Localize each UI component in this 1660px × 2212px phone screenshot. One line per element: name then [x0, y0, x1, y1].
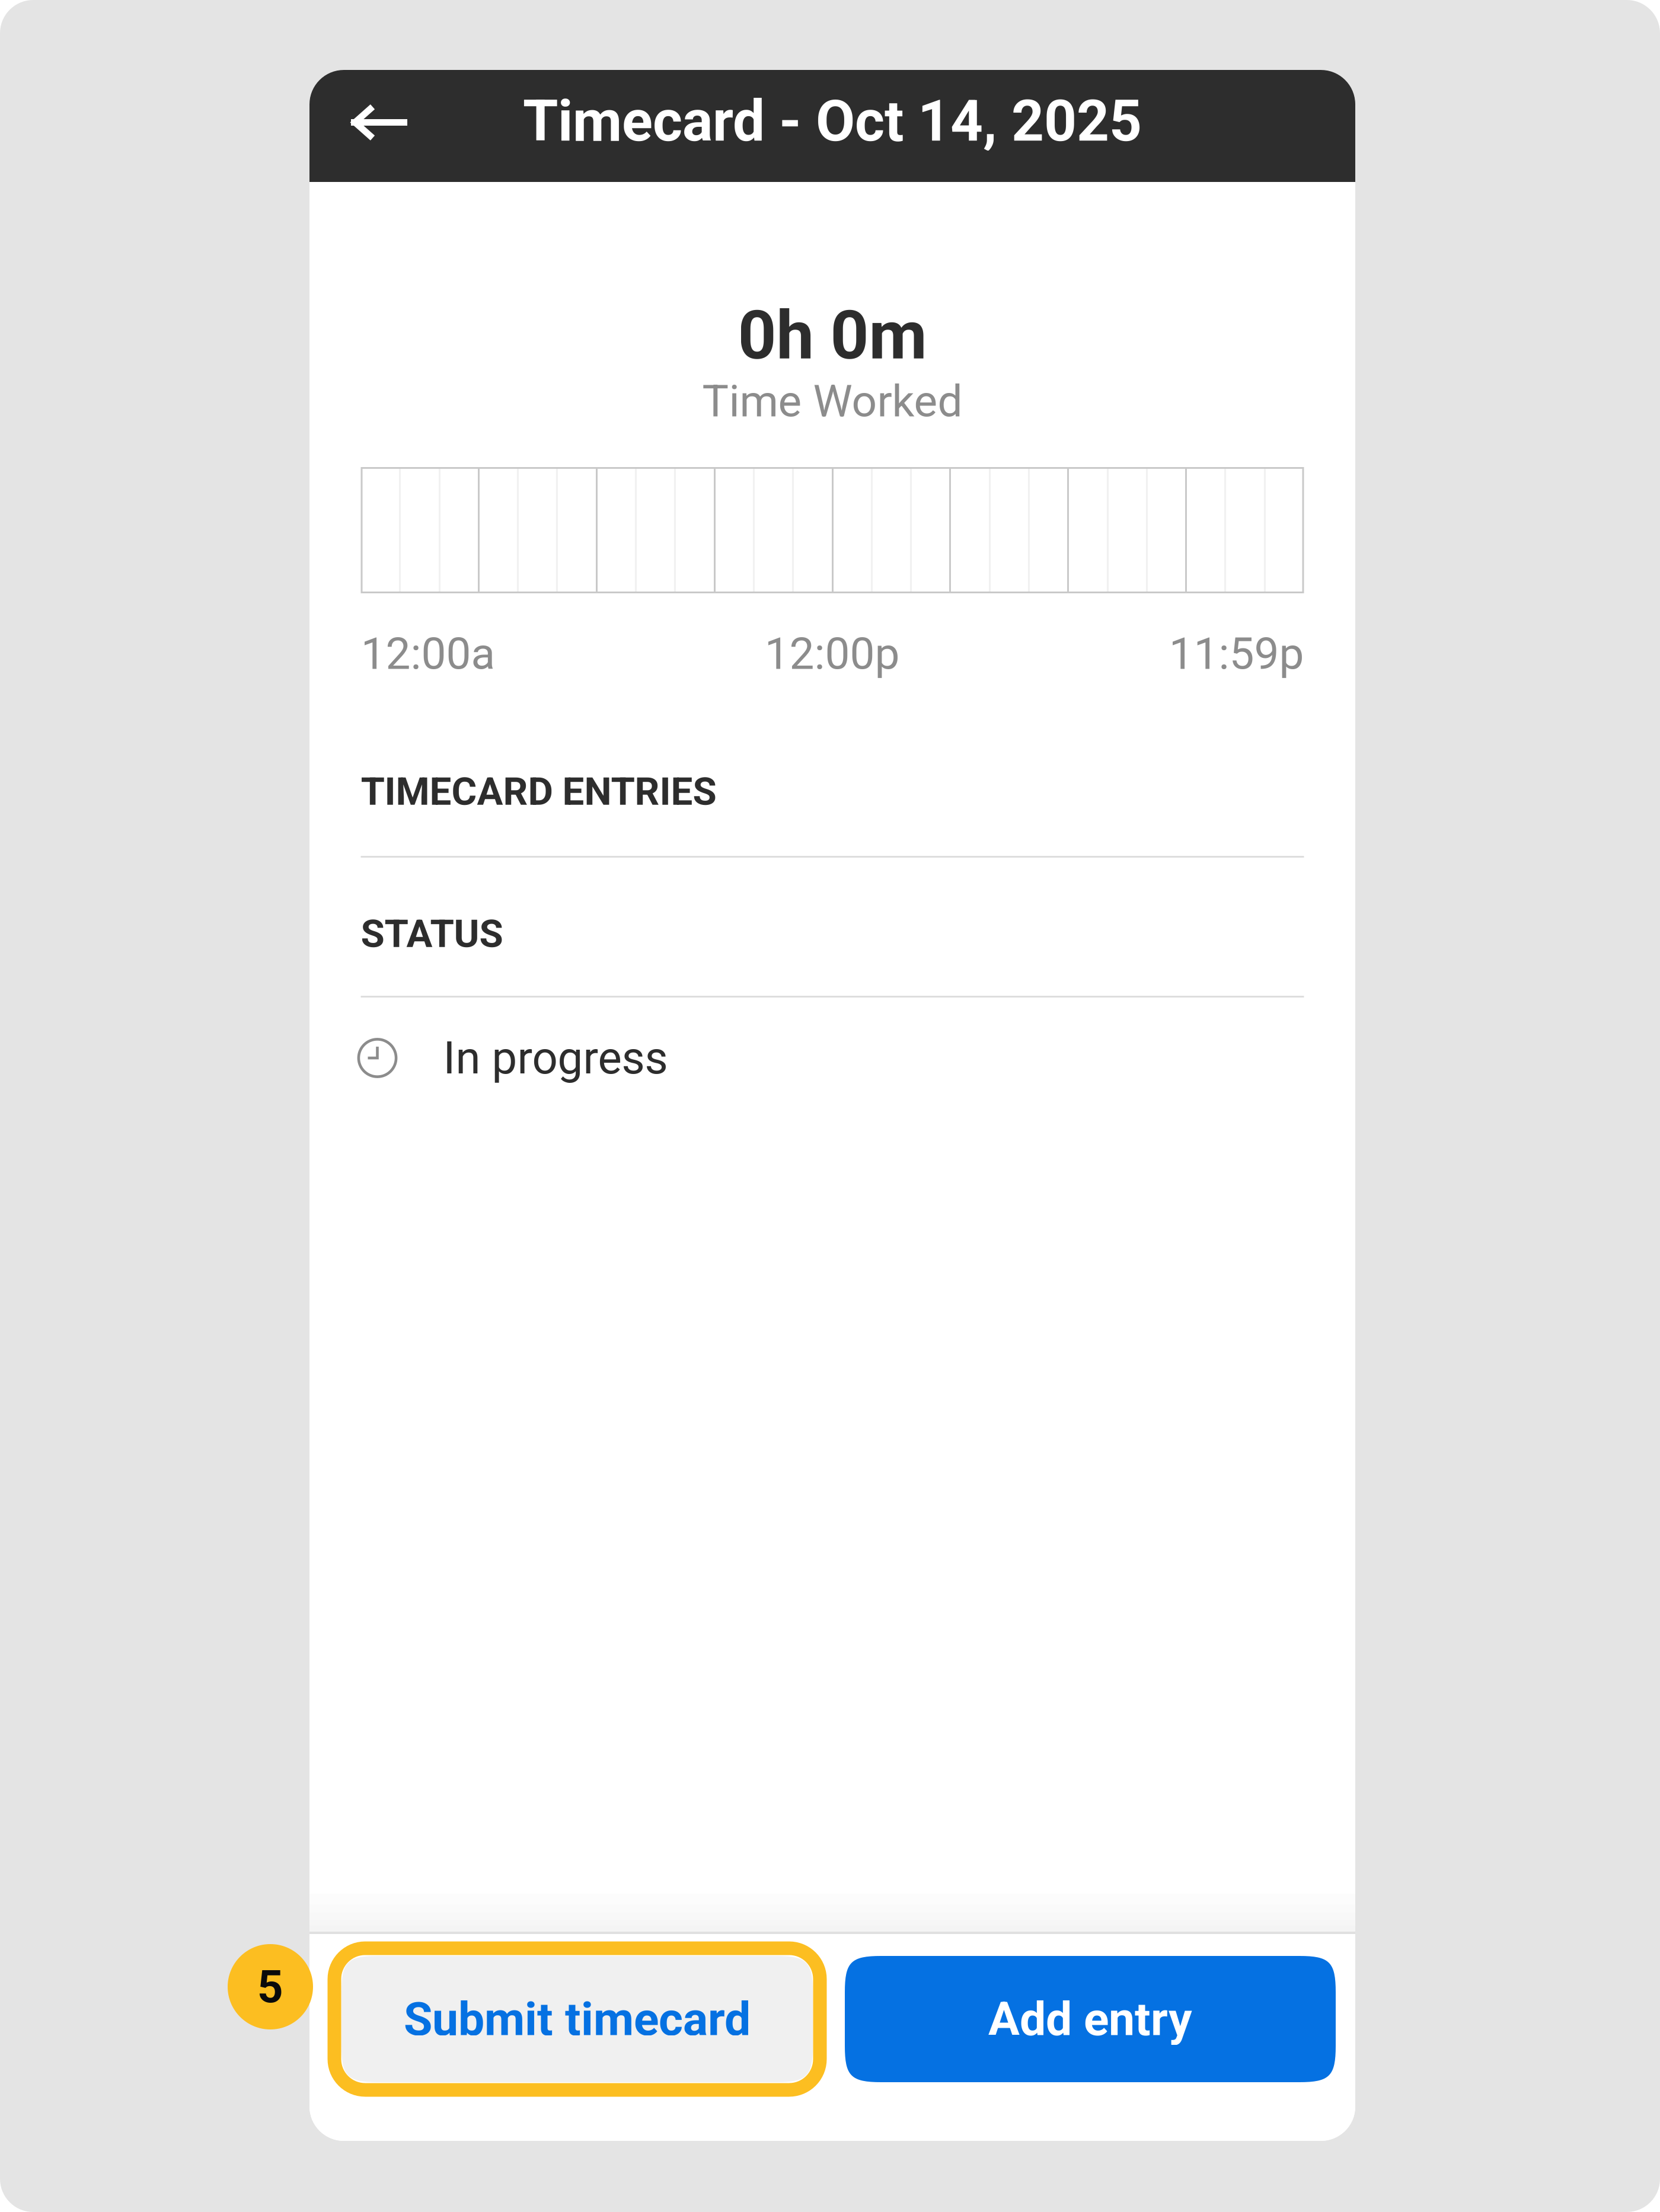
staticText: STATUS: [361, 911, 503, 957]
button[interactable]: Back: [309, 70, 434, 182]
staticText: 11:59p: [1169, 628, 1304, 680]
staticText: In progress: [443, 1032, 668, 1084]
staticText: 12:00a: [361, 628, 495, 680]
button[interactable]: Add entry: [845, 1956, 1336, 2082]
staticText: Timecard - Oct 14, 2025: [523, 88, 1142, 155]
staticText: TIMECARD ENTRIES: [361, 769, 716, 814]
button[interactable]: Submit timecard: [341, 1956, 813, 2082]
staticText: Time Worked: [702, 375, 963, 427]
staticText: 5: [257, 1960, 283, 2013]
staticText: Add entry: [988, 1992, 1192, 2046]
staticText: 12:00p: [764, 628, 900, 680]
staticText: 0h 0m: [738, 296, 927, 375]
staticText: Submit timecard: [404, 1992, 751, 2046]
